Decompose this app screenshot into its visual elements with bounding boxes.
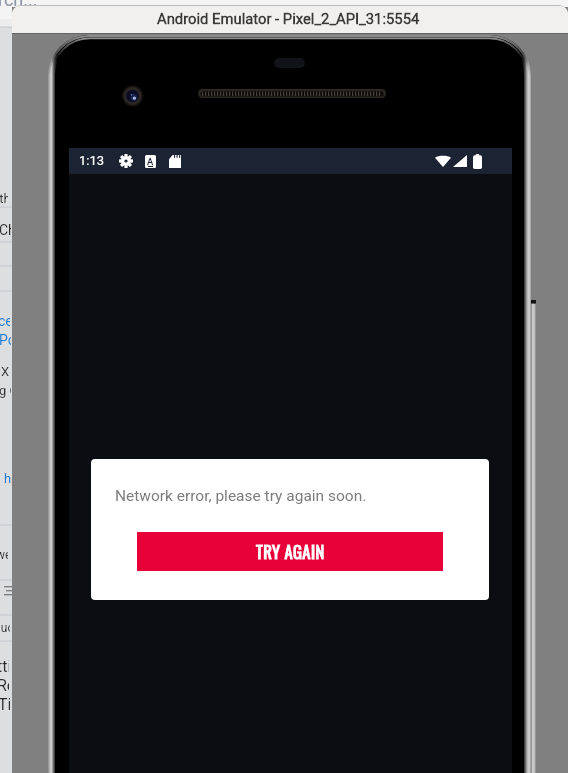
staticText: juce (0, 621, 10, 635)
staticText: Pos (0, 332, 11, 348)
other: Battery (473, 154, 482, 169)
staticText: Tit (0, 695, 10, 714)
other: Keyboard language (145, 155, 156, 168)
staticText: g Co (0, 383, 11, 398)
staticText: hei (4, 471, 12, 486)
staticText: Network error, please try again soon. (115, 487, 367, 505)
staticText: Res (0, 676, 9, 695)
staticText: wer (0, 548, 8, 562)
staticText: X t (1, 364, 12, 379)
staticText: Chi (0, 222, 11, 238)
staticText: 1:13 (79, 153, 105, 168)
other: Mobile signal (453, 155, 467, 167)
other: Settings (119, 154, 133, 168)
staticText: rch... (0, 0, 566, 10)
staticText: ith (0, 191, 8, 206)
staticText: ttin (0, 657, 9, 676)
other: Wi-Fi (435, 155, 451, 167)
staticText: TRY AGAIN (256, 539, 325, 564)
staticText: ce: (0, 313, 10, 329)
staticText: Android Emulator - Pixel_2_API_31:5554 (157, 10, 420, 27)
staticText: A (147, 156, 154, 167)
other: SD card (169, 155, 181, 168)
button[interactable]: TRY AGAIN (137, 532, 443, 571)
